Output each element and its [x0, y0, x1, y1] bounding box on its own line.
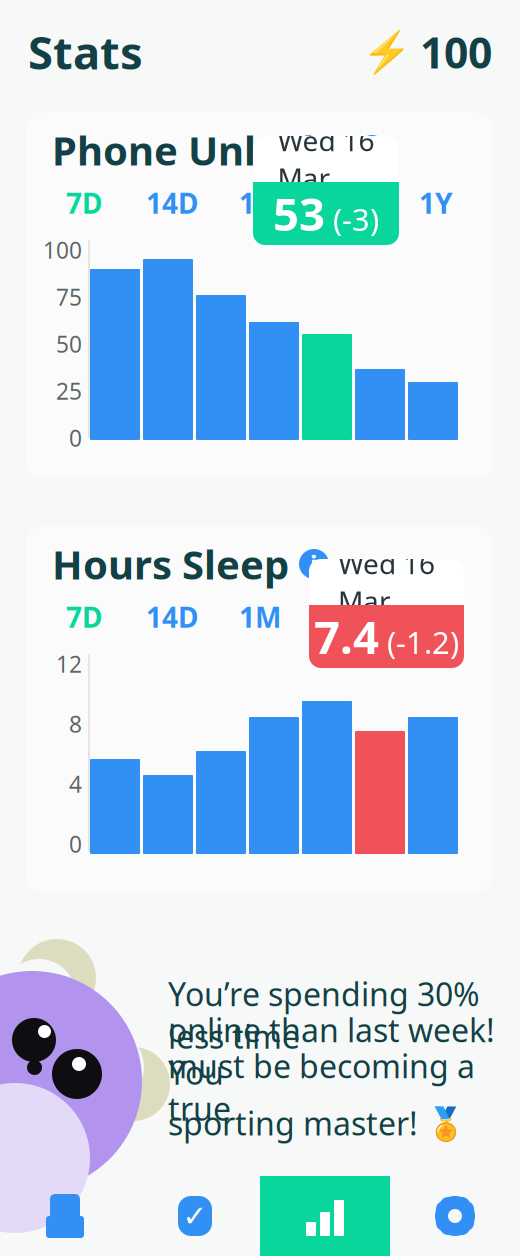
staticText: ✓ — [182, 1199, 207, 1233]
button[interactable]: Stats — [260, 1176, 390, 1256]
staticText: 1Y — [419, 184, 453, 222]
staticText: 7D — [66, 184, 102, 222]
staticText: 3M — [327, 184, 369, 222]
staticText: 100 — [43, 235, 82, 265]
staticText: 14D — [146, 184, 198, 222]
staticText: (-3) — [333, 199, 379, 239]
staticText: 14D — [146, 598, 198, 636]
staticText: 100 — [420, 24, 492, 80]
staticText: Wed 16 Mar — [338, 545, 435, 619]
staticText: (-1.2) — [387, 622, 459, 662]
staticText: online than last week! You — [168, 1008, 495, 1093]
button[interactable]: 14D — [128, 186, 216, 220]
staticText: 4 — [69, 769, 82, 799]
button[interactable]: 3M — [304, 600, 392, 634]
button[interactable]: About Phone Unlocks — [357, 135, 387, 165]
button[interactable]: Energy points: 100 — [362, 24, 492, 80]
staticText: 1Y — [419, 598, 453, 636]
staticText: i — [368, 133, 376, 167]
staticText: 8 — [69, 709, 82, 739]
staticText: 12 — [56, 649, 82, 679]
button[interactable]: Home — [0, 1176, 130, 1256]
button[interactable]: 1Y — [392, 600, 480, 634]
staticText: 0 — [69, 423, 82, 453]
button[interactable]: 7D — [40, 186, 128, 220]
staticText: 7D — [66, 598, 102, 636]
staticText: i — [310, 547, 318, 581]
button[interactable]: 7D — [40, 600, 128, 634]
staticText: 7.4 — [314, 606, 379, 667]
button[interactable]: About Hours Sleep — [299, 549, 329, 579]
staticText: 53 — [273, 183, 325, 244]
staticText: must be becoming a true — [168, 1044, 475, 1129]
button[interactable]: Protection — [130, 1176, 260, 1256]
staticText: 1M — [239, 598, 281, 636]
staticText: Phone Unlocks — [52, 123, 347, 176]
staticText: 1M — [239, 184, 281, 222]
button[interactable]: Settings — [390, 1176, 520, 1256]
staticText: Hours Sleep — [52, 537, 289, 590]
staticText: 50 — [56, 329, 82, 359]
button[interactable]: 14D — [128, 600, 216, 634]
staticText: 0 — [69, 829, 82, 859]
staticText: 25 — [56, 376, 82, 406]
staticText: 75 — [56, 282, 82, 312]
staticText: sporting master! 🏅 — [168, 1102, 466, 1144]
button[interactable]: 1M — [216, 600, 304, 634]
staticText: Wed 16 Mar — [277, 122, 374, 196]
button[interactable]: 1M — [216, 186, 304, 220]
staticText: Stats — [28, 22, 143, 82]
button[interactable]: 1Y — [392, 186, 480, 220]
staticText: ⚡ — [362, 29, 412, 75]
staticText: 3M — [327, 598, 369, 636]
button[interactable]: 3M — [304, 186, 392, 220]
staticText: You’re spending 30% less time — [168, 972, 480, 1057]
